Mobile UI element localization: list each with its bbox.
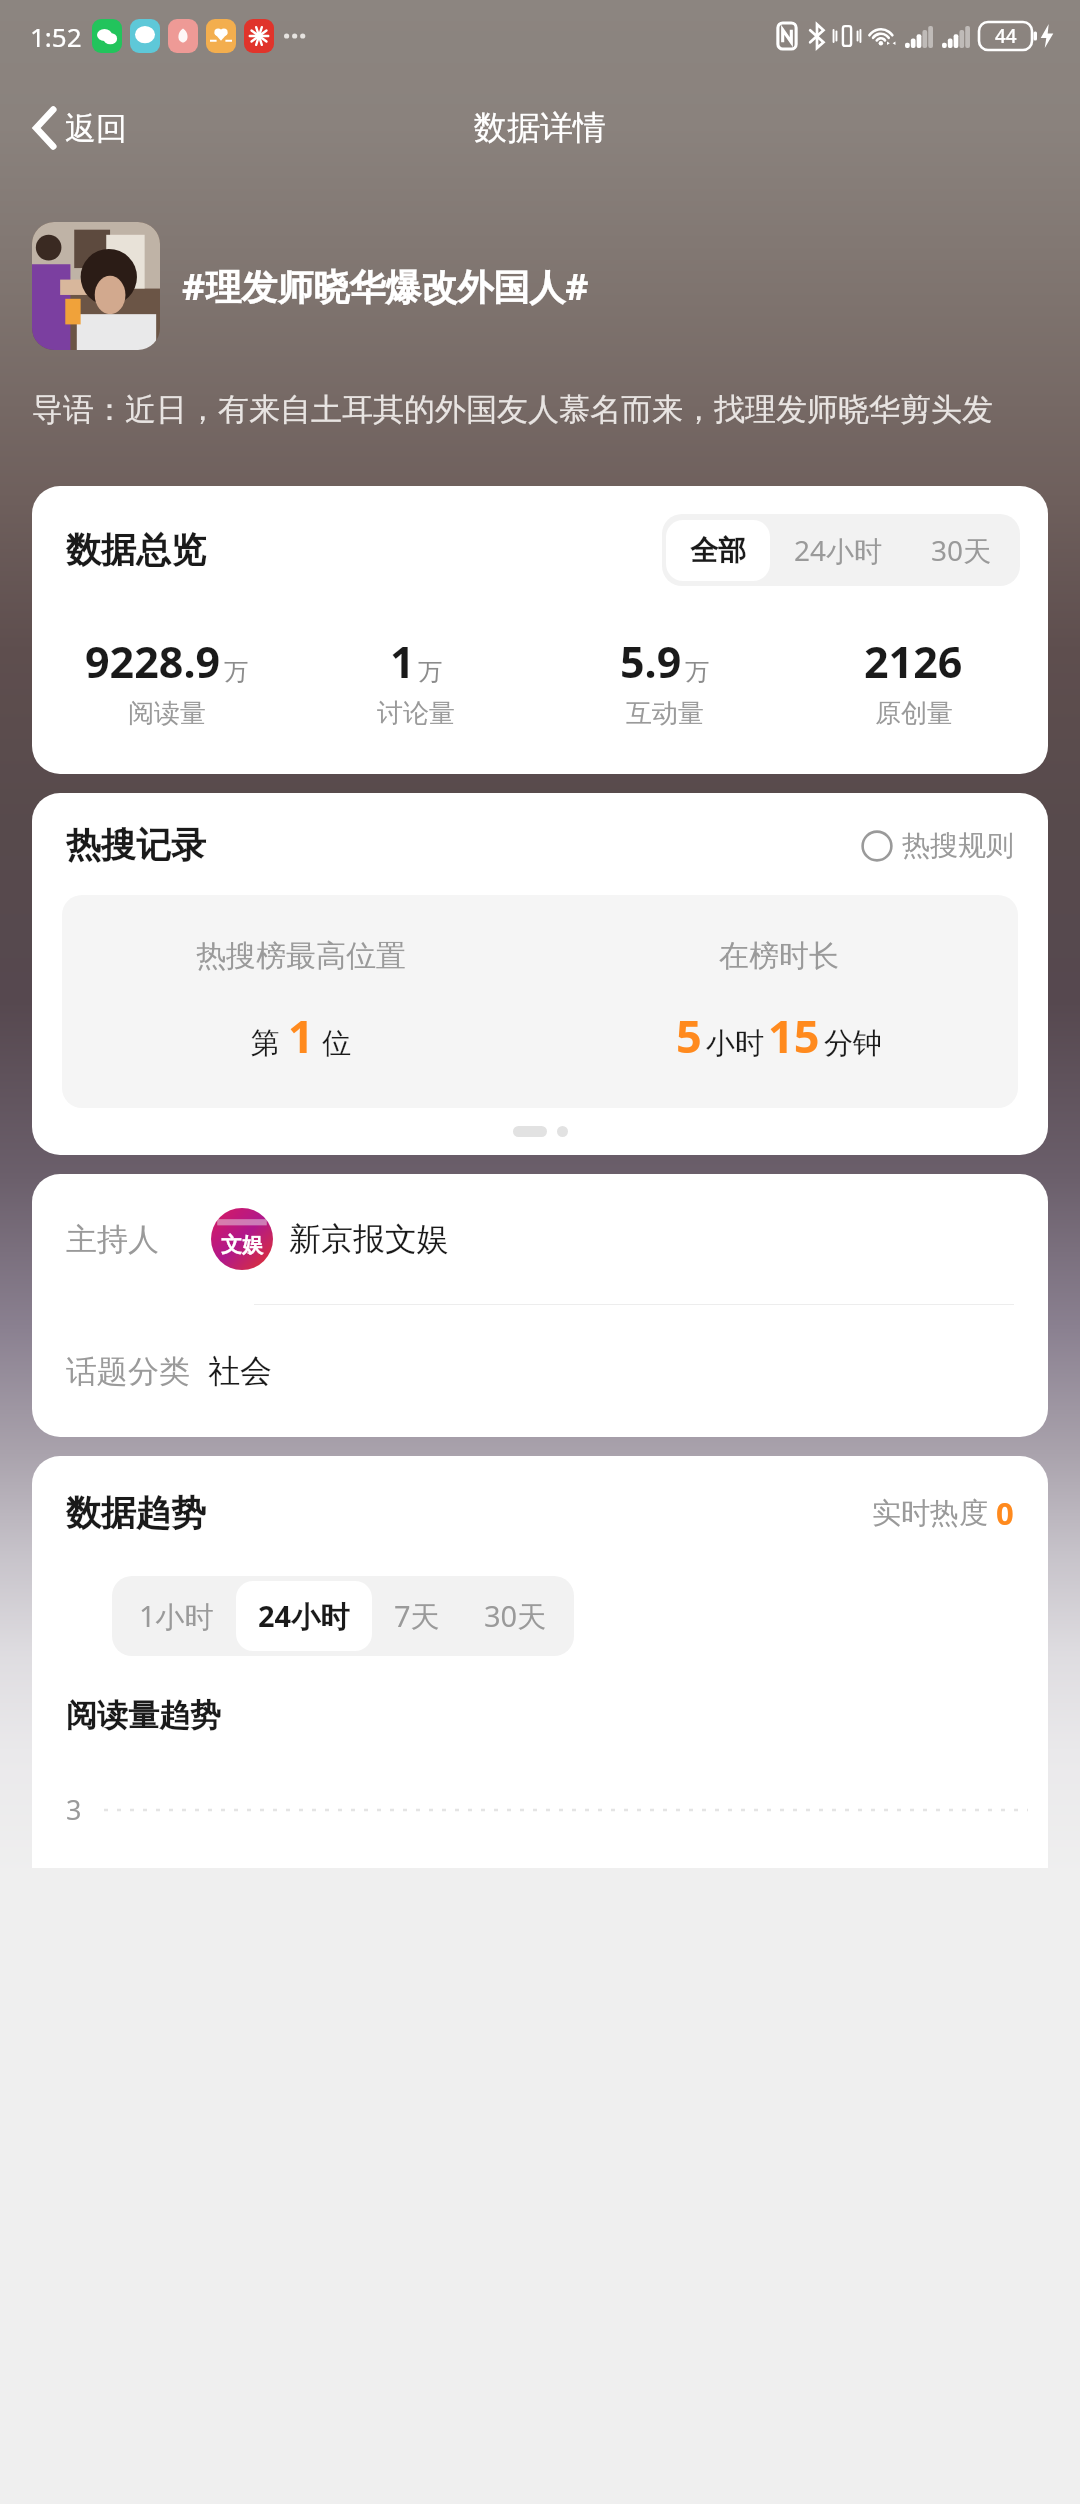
staticText: 万 <box>685 657 709 687</box>
staticText: 热搜规则 <box>902 828 1014 863</box>
staticText: 1:52 <box>30 19 82 54</box>
button[interactable]: 7天 <box>372 1581 462 1651</box>
staticText: 0 <box>996 1492 1014 1534</box>
staticText: 热搜记录 <box>66 823 206 867</box>
staticText: 文娱 <box>221 1232 263 1258</box>
staticText: 小时 <box>706 1025 764 1062</box>
staticText: 2126 <box>864 632 963 691</box>
staticText: 5.9 <box>620 632 682 691</box>
staticText: 1 <box>390 632 415 691</box>
staticText: 在榜时长 <box>719 937 839 975</box>
staticText: 万 <box>224 657 248 687</box>
button[interactable]: 30天 <box>907 518 1016 582</box>
button[interactable]: 热搜规则 <box>857 824 1018 867</box>
staticText: 导语：近日，有来自土耳其的外国友人慕名而来，找理发师晓华剪头发 <box>32 390 1048 429</box>
button[interactable]: 实时热度 <box>868 1488 1018 1538</box>
staticText: 第 <box>251 1025 280 1062</box>
staticText: 全部 <box>690 533 746 568</box>
staticText: 原创量 <box>875 697 953 730</box>
staticText: 9228.9 <box>85 632 221 691</box>
staticText: 7天 <box>394 1596 440 1636</box>
staticText: 热搜榜最高位置 <box>196 937 406 975</box>
button[interactable]: 返回 <box>26 99 133 157</box>
button[interactable]: 24小时 <box>236 1581 372 1651</box>
staticText: 新京报文娱 <box>289 1219 449 1259</box>
staticText: 24小时 <box>794 531 883 569</box>
staticText: 互动量 <box>626 697 704 730</box>
staticText: 3 <box>66 1791 82 1828</box>
staticText: 数据总览 <box>66 528 206 572</box>
staticText: 44 <box>995 23 1017 49</box>
staticText: 话题分类 <box>66 1352 190 1391</box>
staticText: 实时热度 <box>872 1495 988 1532</box>
button[interactable]: 30天 <box>462 1581 569 1651</box>
staticText: 30天 <box>484 1596 547 1636</box>
staticText: 1小时 <box>139 1596 214 1636</box>
staticText: 数据详情 <box>474 107 606 149</box>
staticText: 5 <box>676 1005 702 1066</box>
staticText: 位 <box>322 1025 351 1062</box>
staticText: 社会 <box>208 1351 272 1391</box>
button[interactable]: 主持人 <box>32 1174 1048 1304</box>
button[interactable]: Topic image <box>32 222 160 350</box>
staticText: 阅读量趋势 <box>66 1696 221 1735</box>
button[interactable]: 24小时 <box>770 518 907 582</box>
button[interactable]: 1小时 <box>117 1581 236 1651</box>
button[interactable]: 全部 <box>666 520 770 581</box>
staticText: 24小时 <box>258 1596 350 1636</box>
staticText: 返回 <box>65 109 127 148</box>
staticText: 分钟 <box>824 1025 882 1062</box>
staticText: 数据趋势 <box>66 1491 206 1535</box>
staticText: #理发师晓华爆改外国人# <box>182 262 1048 311</box>
staticText: 万 <box>418 657 442 687</box>
button[interactable]: 话题分类 <box>32 1305 1048 1437</box>
staticText: 1 <box>288 1005 314 1066</box>
staticText: 讨论量 <box>377 697 455 730</box>
staticText: 30天 <box>931 531 992 569</box>
staticText: 主持人 <box>66 1220 159 1259</box>
staticText: 15 <box>768 1005 820 1066</box>
staticText: 阅读量 <box>128 697 206 730</box>
